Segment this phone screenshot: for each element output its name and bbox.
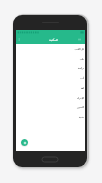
button[interactable]: دراسة	[16, 63, 85, 73]
staticText: تقنية	[78, 116, 84, 118]
button[interactable]: لغة	[16, 83, 85, 93]
staticText: دراسة	[77, 67, 84, 69]
staticText: الإقراء	[77, 97, 84, 99]
button[interactable]: السبور	[16, 102, 85, 112]
button[interactable]: Add	[21, 139, 28, 146]
staticText: طب	[79, 58, 84, 60]
button[interactable]: طب	[16, 54, 85, 64]
staticText: المكتبة	[49, 38, 59, 42]
button[interactable]: كل الكتب	[16, 44, 85, 54]
staticText: كل الكتب	[74, 48, 84, 51]
staticText: أدب	[80, 77, 84, 79]
button[interactable]: تقنية	[16, 112, 85, 122]
staticText: لغة	[80, 87, 84, 89]
staticText: السبور	[76, 106, 84, 108]
button[interactable]: أدب	[16, 73, 85, 83]
button[interactable]: الإقراء	[16, 93, 85, 103]
